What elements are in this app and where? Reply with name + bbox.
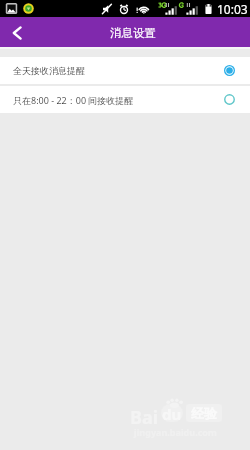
staticText: 消息设置 — [110, 26, 156, 40]
staticText: 经验 — [191, 405, 217, 421]
button[interactable]: Back — [0, 17, 34, 47]
staticText: du — [162, 404, 182, 422]
staticText: 只在8:00 - 22：00 间接收提醒 — [13, 94, 134, 106]
button[interactable]: 只在8:00 - 22：00 间接收提醒 — [0, 86, 250, 113]
staticText: 10:03 — [217, 1, 248, 17]
button[interactable]: 全天接收消息提醒 — [0, 57, 250, 84]
staticText: 全天接收消息提醒 — [13, 65, 85, 76]
staticText: Bai — [130, 405, 159, 430]
